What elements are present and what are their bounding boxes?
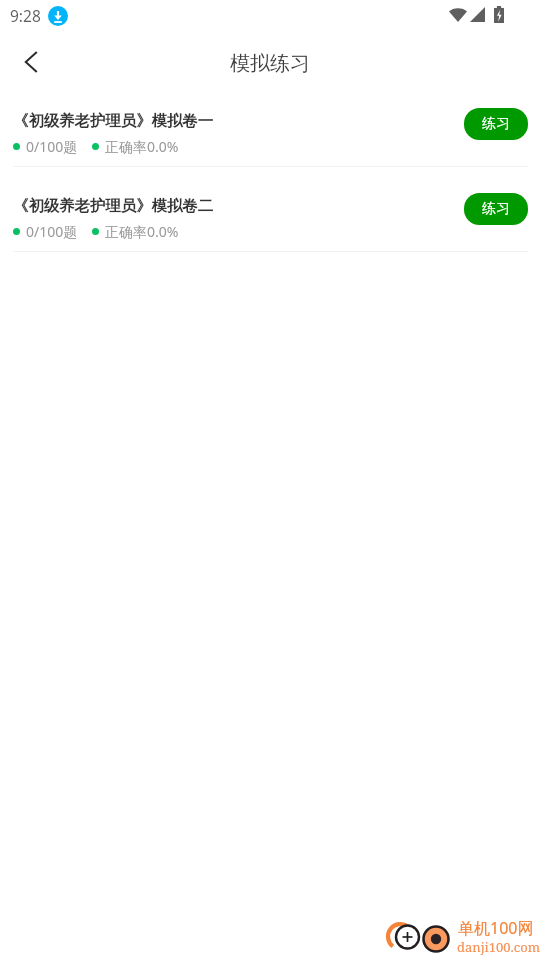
staticText: 单机100网 [458, 917, 534, 939]
staticText: 正确率0.0% [105, 222, 179, 241]
staticText: 0/100题 [26, 137, 78, 156]
staticText: 正确率0.0% [105, 137, 179, 156]
staticText: 练习 [482, 200, 510, 218]
staticText: 《初级养老护理员》模拟卷一 [13, 111, 214, 130]
button[interactable]: 练习 [464, 193, 528, 225]
staticText: 9:28 [10, 5, 41, 26]
staticText: danji100.com [457, 938, 540, 956]
staticText: 0/100题 [26, 222, 78, 241]
button[interactable]: 练习 [464, 108, 528, 140]
button[interactable]: 《初级养老护理员》模拟卷一 [0, 82, 540, 166]
staticText: 《初级养老护理员》模拟卷二 [13, 196, 214, 215]
button[interactable]: Back [6, 37, 58, 87]
staticText: 模拟练习 [230, 51, 310, 76]
staticText: 练习 [482, 115, 510, 133]
button[interactable]: 《初级养老护理员》模拟卷二 [0, 167, 540, 251]
